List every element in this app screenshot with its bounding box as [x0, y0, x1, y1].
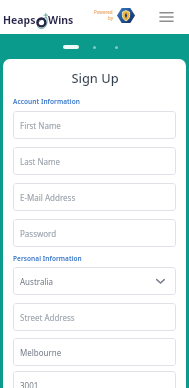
button[interactable] — [93, 46, 96, 49]
staticText: Password — [20, 228, 57, 239]
staticText: 3001 — [20, 380, 39, 388]
staticText: Wins — [48, 13, 74, 27]
button[interactable]: Last Name — [13, 147, 176, 175]
staticText: First Name — [20, 120, 61, 131]
other: Security badge — [117, 8, 135, 23]
staticText: Last Name — [20, 156, 61, 167]
button[interactable] — [115, 46, 118, 49]
button[interactable]: Heaps — [3, 13, 74, 27]
button[interactable]: 3001 — [13, 371, 176, 388]
staticText: Australia — [20, 276, 54, 287]
button[interactable]: Australia — [13, 267, 176, 295]
staticText: Melbourne — [20, 347, 62, 358]
staticText: Account Information — [13, 97, 80, 106]
button[interactable] — [63, 45, 79, 49]
other: Open country list — [156, 276, 165, 286]
button[interactable]: Melbourne — [13, 338, 176, 366]
staticText: Personal Information — [13, 254, 82, 263]
staticText: E-Mail Address — [20, 192, 76, 203]
button[interactable]: E-Mail Address — [13, 183, 176, 211]
button[interactable]: Password — [13, 219, 176, 247]
staticText: Heaps — [3, 13, 36, 27]
staticText: Street Address — [20, 312, 75, 323]
button[interactable]: First Name — [13, 111, 176, 139]
staticText: Sign Up — [71, 69, 119, 86]
button[interactable]: Street Address — [13, 303, 176, 331]
button[interactable]: Menu — [155, 7, 179, 27]
staticText: Powered — [94, 9, 113, 15]
staticText: by — [108, 15, 113, 21]
